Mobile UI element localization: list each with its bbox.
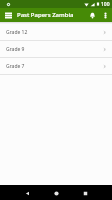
button[interactable]: Home: [49, 186, 63, 200]
button[interactable]: More options: [99, 9, 112, 22]
button[interactable]: Grade 7: [0, 58, 112, 75]
staticText: Grade 9: [6, 46, 25, 53]
button[interactable]: Grade 12: [0, 24, 112, 41]
button[interactable]: Recent apps: [78, 186, 92, 200]
button[interactable]: Grade 9: [0, 41, 112, 58]
staticText: 100: [101, 1, 110, 8]
staticText: Past Papers Zambia: [17, 11, 74, 19]
staticText: Grade 7: [6, 63, 25, 70]
staticText: Grade 12: [6, 29, 28, 36]
button[interactable]: Open navigation drawer: [0, 8, 17, 22]
button[interactable]: Notifications: [85, 8, 99, 22]
button[interactable]: Back: [20, 186, 34, 200]
